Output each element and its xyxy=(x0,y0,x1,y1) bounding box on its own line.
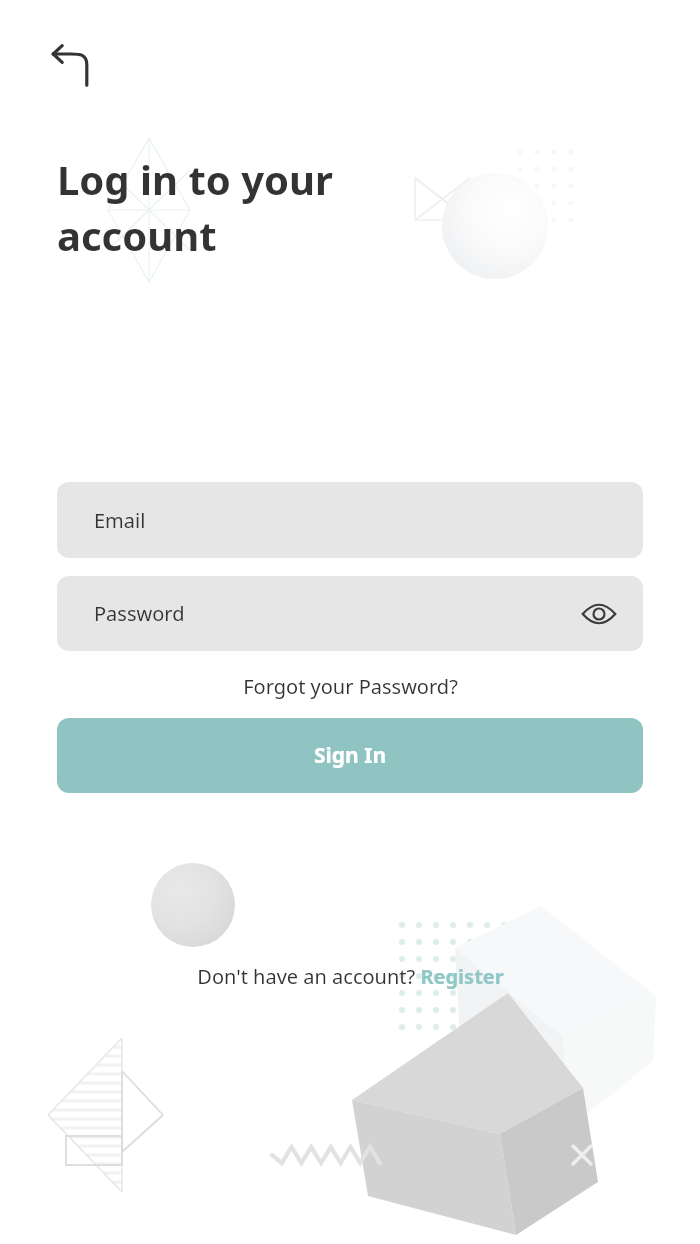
staticText: Password xyxy=(94,600,185,627)
button[interactable]: Email xyxy=(57,482,643,558)
staticText: Email xyxy=(94,507,146,534)
staticText: Forgot your Password? xyxy=(243,673,458,700)
staticText: Log in to your account xyxy=(57,152,333,263)
staticText: Don't have an account? Register xyxy=(197,963,504,990)
button[interactable]: Back xyxy=(40,36,100,96)
button[interactable]: Sign In xyxy=(57,718,643,793)
button[interactable]: Password xyxy=(57,576,643,651)
staticText: Sign In xyxy=(314,741,387,770)
button[interactable]: Don't have an account? Register xyxy=(140,958,560,994)
button[interactable]: Forgot your Password? xyxy=(200,668,500,704)
button[interactable]: Show password xyxy=(577,592,621,636)
